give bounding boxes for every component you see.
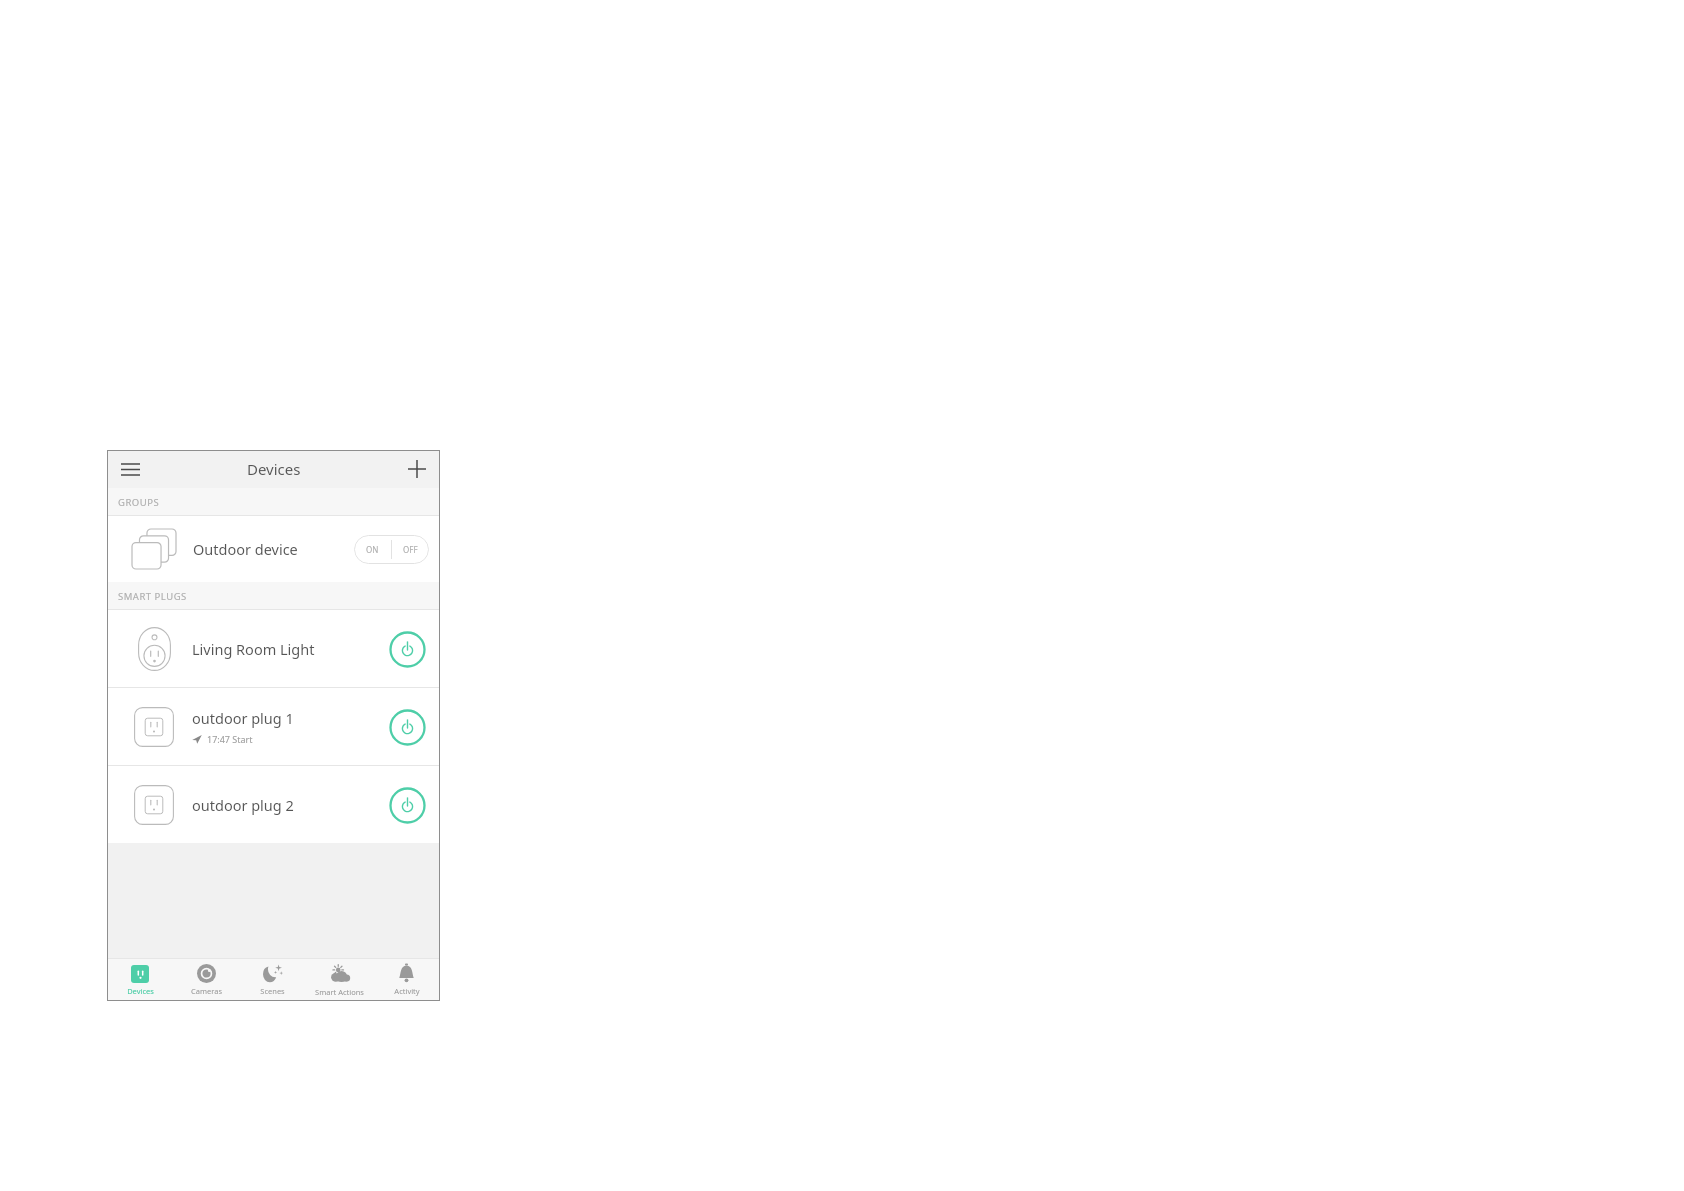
staticText: Outdoor device <box>193 539 354 559</box>
button[interactable]: outdoor plug 1 <box>107 688 440 765</box>
button[interactable]: Smart Actions <box>306 959 373 1001</box>
button[interactable]: outdoor plug 2 <box>107 766 440 843</box>
staticText: Activity <box>394 986 420 996</box>
button[interactable]: Add device <box>401 453 433 485</box>
button[interactable]: Living Room Light <box>107 610 440 687</box>
staticText: outdoor plug 1 <box>192 708 294 728</box>
staticText: Devices <box>247 459 301 479</box>
button[interactable]: Outdoor device <box>107 516 440 582</box>
staticText: Scenes <box>260 986 285 996</box>
staticText: OFF <box>403 544 418 555</box>
button[interactable]: ON <box>354 535 429 564</box>
staticText: SMART PLUGS <box>118 590 187 603</box>
staticText: Devices <box>127 986 154 996</box>
button[interactable]: Cameras <box>173 959 239 1001</box>
button[interactable]: Devices <box>107 959 173 1001</box>
button[interactable]: Scenes <box>239 959 306 1001</box>
staticText: Cameras <box>191 986 222 996</box>
staticText: 17:47 Start <box>207 733 253 745</box>
button[interactable]: Toggle power Living Room Light <box>385 627 429 671</box>
staticText: outdoor plug 2 <box>192 795 294 815</box>
staticText: Smart Actions <box>315 987 364 997</box>
staticText: Living Room Light <box>192 639 315 659</box>
button[interactable]: Toggle power outdoor plug 1 <box>385 705 429 749</box>
button[interactable]: Menu <box>114 453 146 485</box>
button[interactable]: Activity <box>373 959 440 1001</box>
staticText: GROUPS <box>118 496 160 509</box>
staticText: ON <box>366 544 379 555</box>
button[interactable]: Toggle power outdoor plug 2 <box>385 783 429 827</box>
